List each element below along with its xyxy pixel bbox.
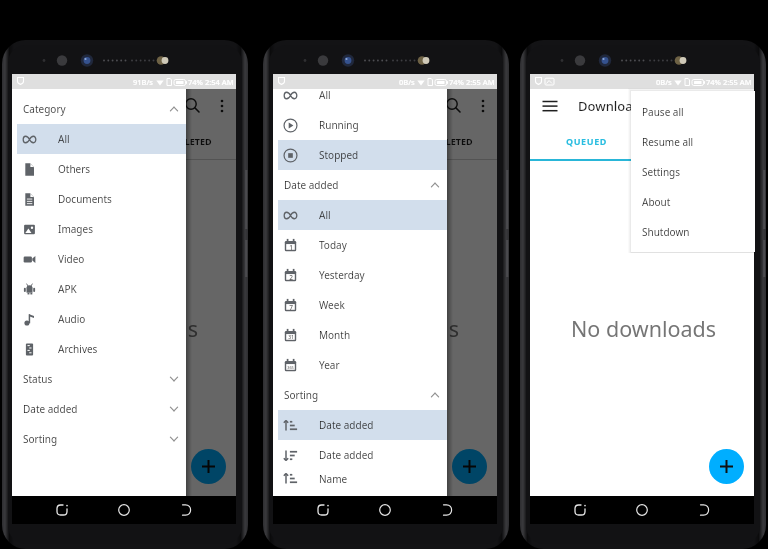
staticText: No downloads <box>571 314 717 343</box>
button[interactable]: Search <box>445 97 463 115</box>
staticText: Archives <box>58 342 98 356</box>
button[interactable]: More options <box>214 98 230 114</box>
button[interactable]: Settings <box>631 157 755 187</box>
staticText: 0B/s <box>399 77 415 87</box>
button[interactable]: Date added <box>273 170 447 200</box>
staticText: 91B/s <box>133 77 154 87</box>
staticText: Category <box>23 102 66 116</box>
button[interactable]: Add download <box>452 449 487 484</box>
button[interactable]: Audio <box>17 304 186 334</box>
button[interactable]: Date added <box>12 394 186 424</box>
button[interactable]: Open navigation drawer <box>541 97 559 115</box>
button[interactable]: Name <box>278 470 447 487</box>
staticText: Sorting <box>284 388 319 402</box>
staticText: Images <box>58 222 93 236</box>
staticText: No downloads <box>314 314 460 343</box>
button[interactable]: Resume all <box>631 127 755 157</box>
staticText: Shutdown <box>642 225 690 239</box>
staticText: Pause all <box>642 105 684 119</box>
staticText: 7 <box>289 303 293 312</box>
button[interactable]: Others <box>17 154 186 184</box>
button[interactable]: All <box>278 89 447 110</box>
staticText: Downloads <box>578 97 648 115</box>
staticText: COMPLETED <box>419 135 473 147</box>
staticText: APK <box>58 282 77 296</box>
staticText: About <box>642 195 671 209</box>
button[interactable]: More options <box>475 98 491 114</box>
staticText: 365 <box>287 365 294 370</box>
staticText: Status <box>23 372 53 386</box>
button[interactable]: Shutdown <box>631 217 755 247</box>
staticText: Others <box>58 162 91 176</box>
staticText: All <box>319 89 331 102</box>
staticText: COMPLETED <box>158 135 212 147</box>
button[interactable]: Category <box>12 94 186 124</box>
button[interactable]: Video <box>17 244 186 274</box>
staticText: All <box>319 208 331 222</box>
button[interactable]: Add download <box>191 449 226 484</box>
staticText: Date added <box>23 402 78 416</box>
button[interactable]: Images <box>17 214 186 244</box>
staticText: All <box>58 132 70 146</box>
button[interactable]: APK <box>17 274 186 304</box>
staticText: Running <box>319 118 359 132</box>
staticText: Month <box>319 328 351 342</box>
button[interactable]: 31 <box>278 320 447 350</box>
button[interactable]: COMPLETED <box>642 123 754 159</box>
staticText: 1 <box>289 243 293 252</box>
staticText: Date added <box>319 418 374 432</box>
button[interactable]: Sorting <box>12 424 186 454</box>
staticText: Stopped <box>319 148 359 162</box>
staticText: 2 <box>289 273 293 282</box>
staticText: QUEUED <box>566 135 607 147</box>
staticText: Week <box>319 298 345 312</box>
staticText: 74% 2:54 AM <box>188 77 234 87</box>
button[interactable]: Running <box>278 110 447 140</box>
button[interactable]: Documents <box>17 184 186 214</box>
staticText: Today <box>319 238 347 252</box>
button[interactable]: 1 <box>278 230 447 260</box>
staticText: Date added <box>319 448 374 462</box>
staticText: No downloads <box>53 314 199 343</box>
staticText: Sorting <box>23 432 58 446</box>
staticText: Audio <box>58 312 86 326</box>
staticText: Resume all <box>642 135 694 149</box>
button[interactable]: All <box>17 124 186 154</box>
button[interactable]: QUEUED <box>530 123 642 159</box>
button[interactable]: About <box>631 187 755 217</box>
button[interactable]: 365 <box>278 350 447 380</box>
staticText: COMPLETED <box>671 135 725 147</box>
button[interactable]: All <box>278 200 447 230</box>
staticText: Settings <box>642 165 681 179</box>
button[interactable]: 7 <box>278 290 447 320</box>
button[interactable]: Search <box>184 97 202 115</box>
staticText: 31 <box>288 334 294 341</box>
button[interactable]: Add download <box>709 449 744 484</box>
staticText: 0B/s <box>656 77 672 87</box>
staticText: 74% 2:55 AM <box>449 77 495 87</box>
button[interactable]: Status <box>12 364 186 394</box>
button[interactable]: Pause all <box>631 97 755 127</box>
button[interactable]: Sorting <box>273 380 447 410</box>
staticText: Year <box>319 358 340 372</box>
staticText: Documents <box>58 192 112 206</box>
button[interactable]: 2 <box>278 260 447 290</box>
button[interactable]: Date added <box>278 410 447 440</box>
staticText: Name <box>319 472 348 486</box>
button[interactable]: Archives <box>17 334 186 364</box>
button[interactable]: Stopped <box>278 140 447 170</box>
staticText: 74% 2:55 AM <box>706 77 752 87</box>
staticText: Yesterday <box>319 268 365 282</box>
staticText: Video <box>58 252 85 266</box>
staticText: Date added <box>284 178 339 192</box>
button[interactable]: Date added <box>278 440 447 470</box>
